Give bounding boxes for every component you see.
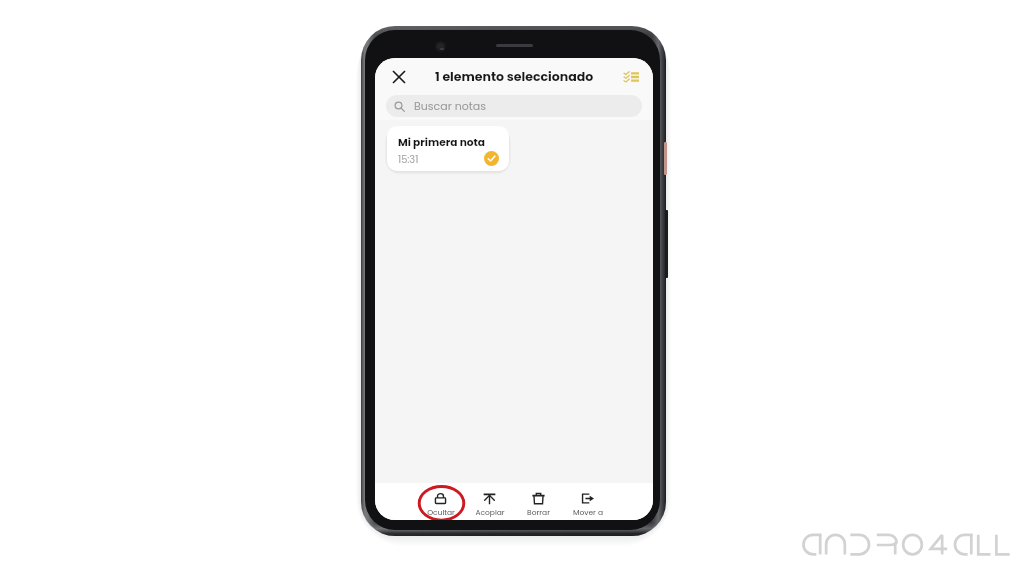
staticText: Buscar notas — [414, 98, 486, 113]
button[interactable]: Acoplar — [465, 483, 514, 520]
staticText: Acoplar — [475, 507, 505, 517]
button[interactable]: Buscar notas — [386, 95, 642, 117]
staticText: 1 elemento seleccionado — [435, 68, 594, 86]
button[interactable]: Mover a — [563, 483, 612, 520]
button[interactable]: Borrar — [514, 483, 563, 520]
staticText: Mi primera nota — [398, 135, 486, 150]
button[interactable]: Ocultar — [416, 483, 465, 520]
staticText: Borrar — [527, 507, 550, 517]
staticText: Mover a — [573, 507, 603, 517]
staticText: Ocultar — [427, 507, 455, 517]
staticText: 15:31 — [398, 153, 419, 167]
button[interactable]: Seleccionar todo — [620, 66, 642, 88]
button[interactable]: Cerrar — [387, 65, 411, 89]
other: andro4all — [800, 533, 1015, 556]
button[interactable]: Mi primera nota — [387, 126, 509, 171]
